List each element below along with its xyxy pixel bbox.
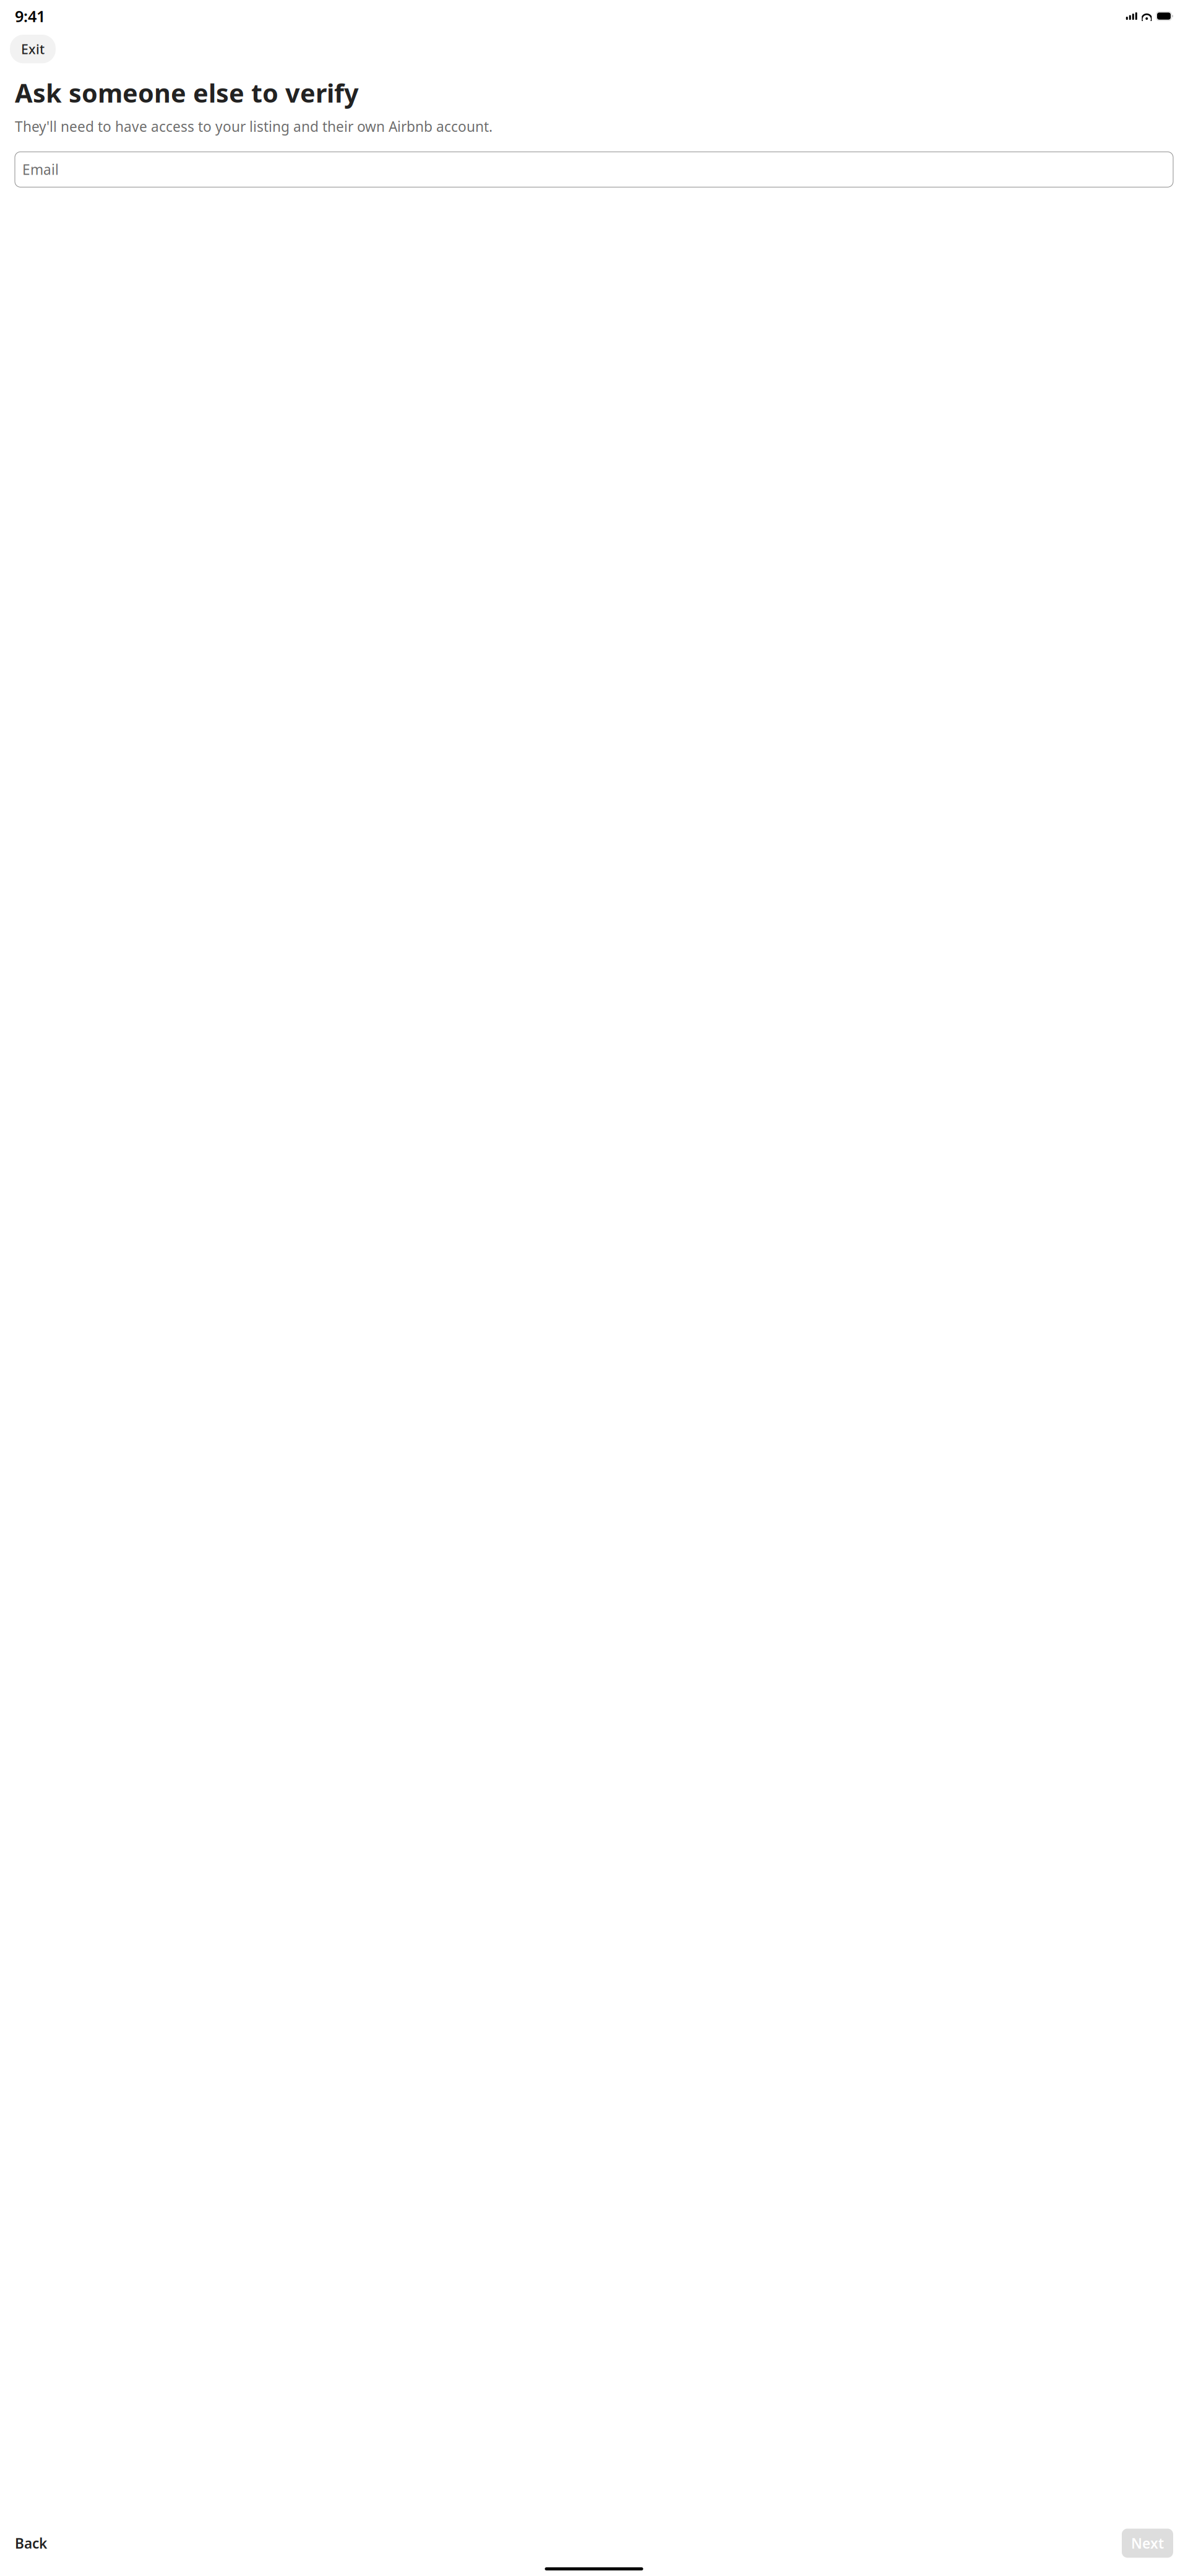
staticText: Email: [22, 160, 59, 179]
staticText: Next: [1131, 2534, 1164, 2552]
button[interactable]: Exit: [10, 35, 56, 63]
staticText: 9:41: [15, 6, 45, 26]
staticText: They'll need to have access to your list…: [15, 117, 493, 136]
button[interactable]: Back: [15, 2528, 53, 2559]
staticText: Exit: [21, 40, 45, 58]
staticText: Back: [15, 2534, 47, 2552]
button[interactable]: Next: [1122, 2529, 1173, 2558]
button[interactable]: Email: [15, 152, 1173, 187]
staticText: Ask someone else to verify: [15, 76, 359, 110]
